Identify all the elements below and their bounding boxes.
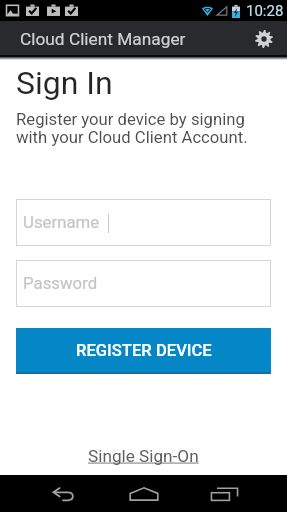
button[interactable]: Single Sign-On: [84, 442, 203, 470]
button[interactable]: Home: [103, 475, 184, 512]
staticText: Password: [23, 273, 98, 293]
button[interactable]: REGISTER DEVICE: [16, 328, 271, 374]
staticText: Register your device by signing with you…: [16, 110, 248, 148]
button[interactable]: Back: [22, 475, 103, 512]
button[interactable]: Settings: [246, 21, 281, 56]
staticText: Username: [23, 212, 100, 232]
button[interactable]: Username: [16, 199, 271, 246]
button[interactable]: Recents: [184, 475, 265, 512]
staticText: 10:28: [246, 2, 284, 20]
button[interactable]: Password: [16, 260, 271, 307]
staticText: Sign In: [16, 64, 113, 102]
staticText: REGISTER DEVICE: [76, 341, 212, 360]
staticText: Cloud Client Manager: [20, 29, 186, 49]
